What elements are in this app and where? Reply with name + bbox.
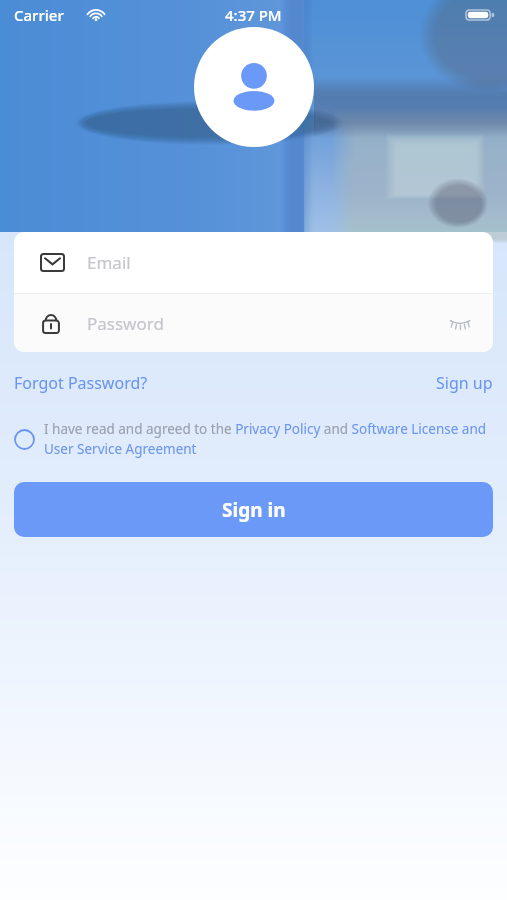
button[interactable]: Password bbox=[14, 294, 493, 352]
staticText: Sign up bbox=[436, 372, 493, 394]
button[interactable]: Sign in bbox=[14, 482, 493, 537]
staticText: Forgot Password? bbox=[14, 372, 148, 394]
staticText: Sign in bbox=[222, 497, 286, 523]
button[interactable]: Forgot Password? bbox=[14, 372, 148, 394]
staticText: Email bbox=[87, 251, 131, 274]
button[interactable]: I have read and agreed to the Privacy Po… bbox=[14, 420, 493, 458]
other: Profile avatar bbox=[194, 27, 314, 147]
staticText: 4:37 PM bbox=[225, 5, 282, 25]
button[interactable]: Email bbox=[14, 232, 493, 293]
button[interactable]: Show password bbox=[447, 310, 473, 336]
button[interactable]: Sign up bbox=[436, 372, 493, 394]
staticText: Password bbox=[87, 312, 447, 335]
staticText: Carrier bbox=[14, 5, 64, 25]
staticText: I have read and agreed to the Privacy Po… bbox=[44, 420, 493, 458]
